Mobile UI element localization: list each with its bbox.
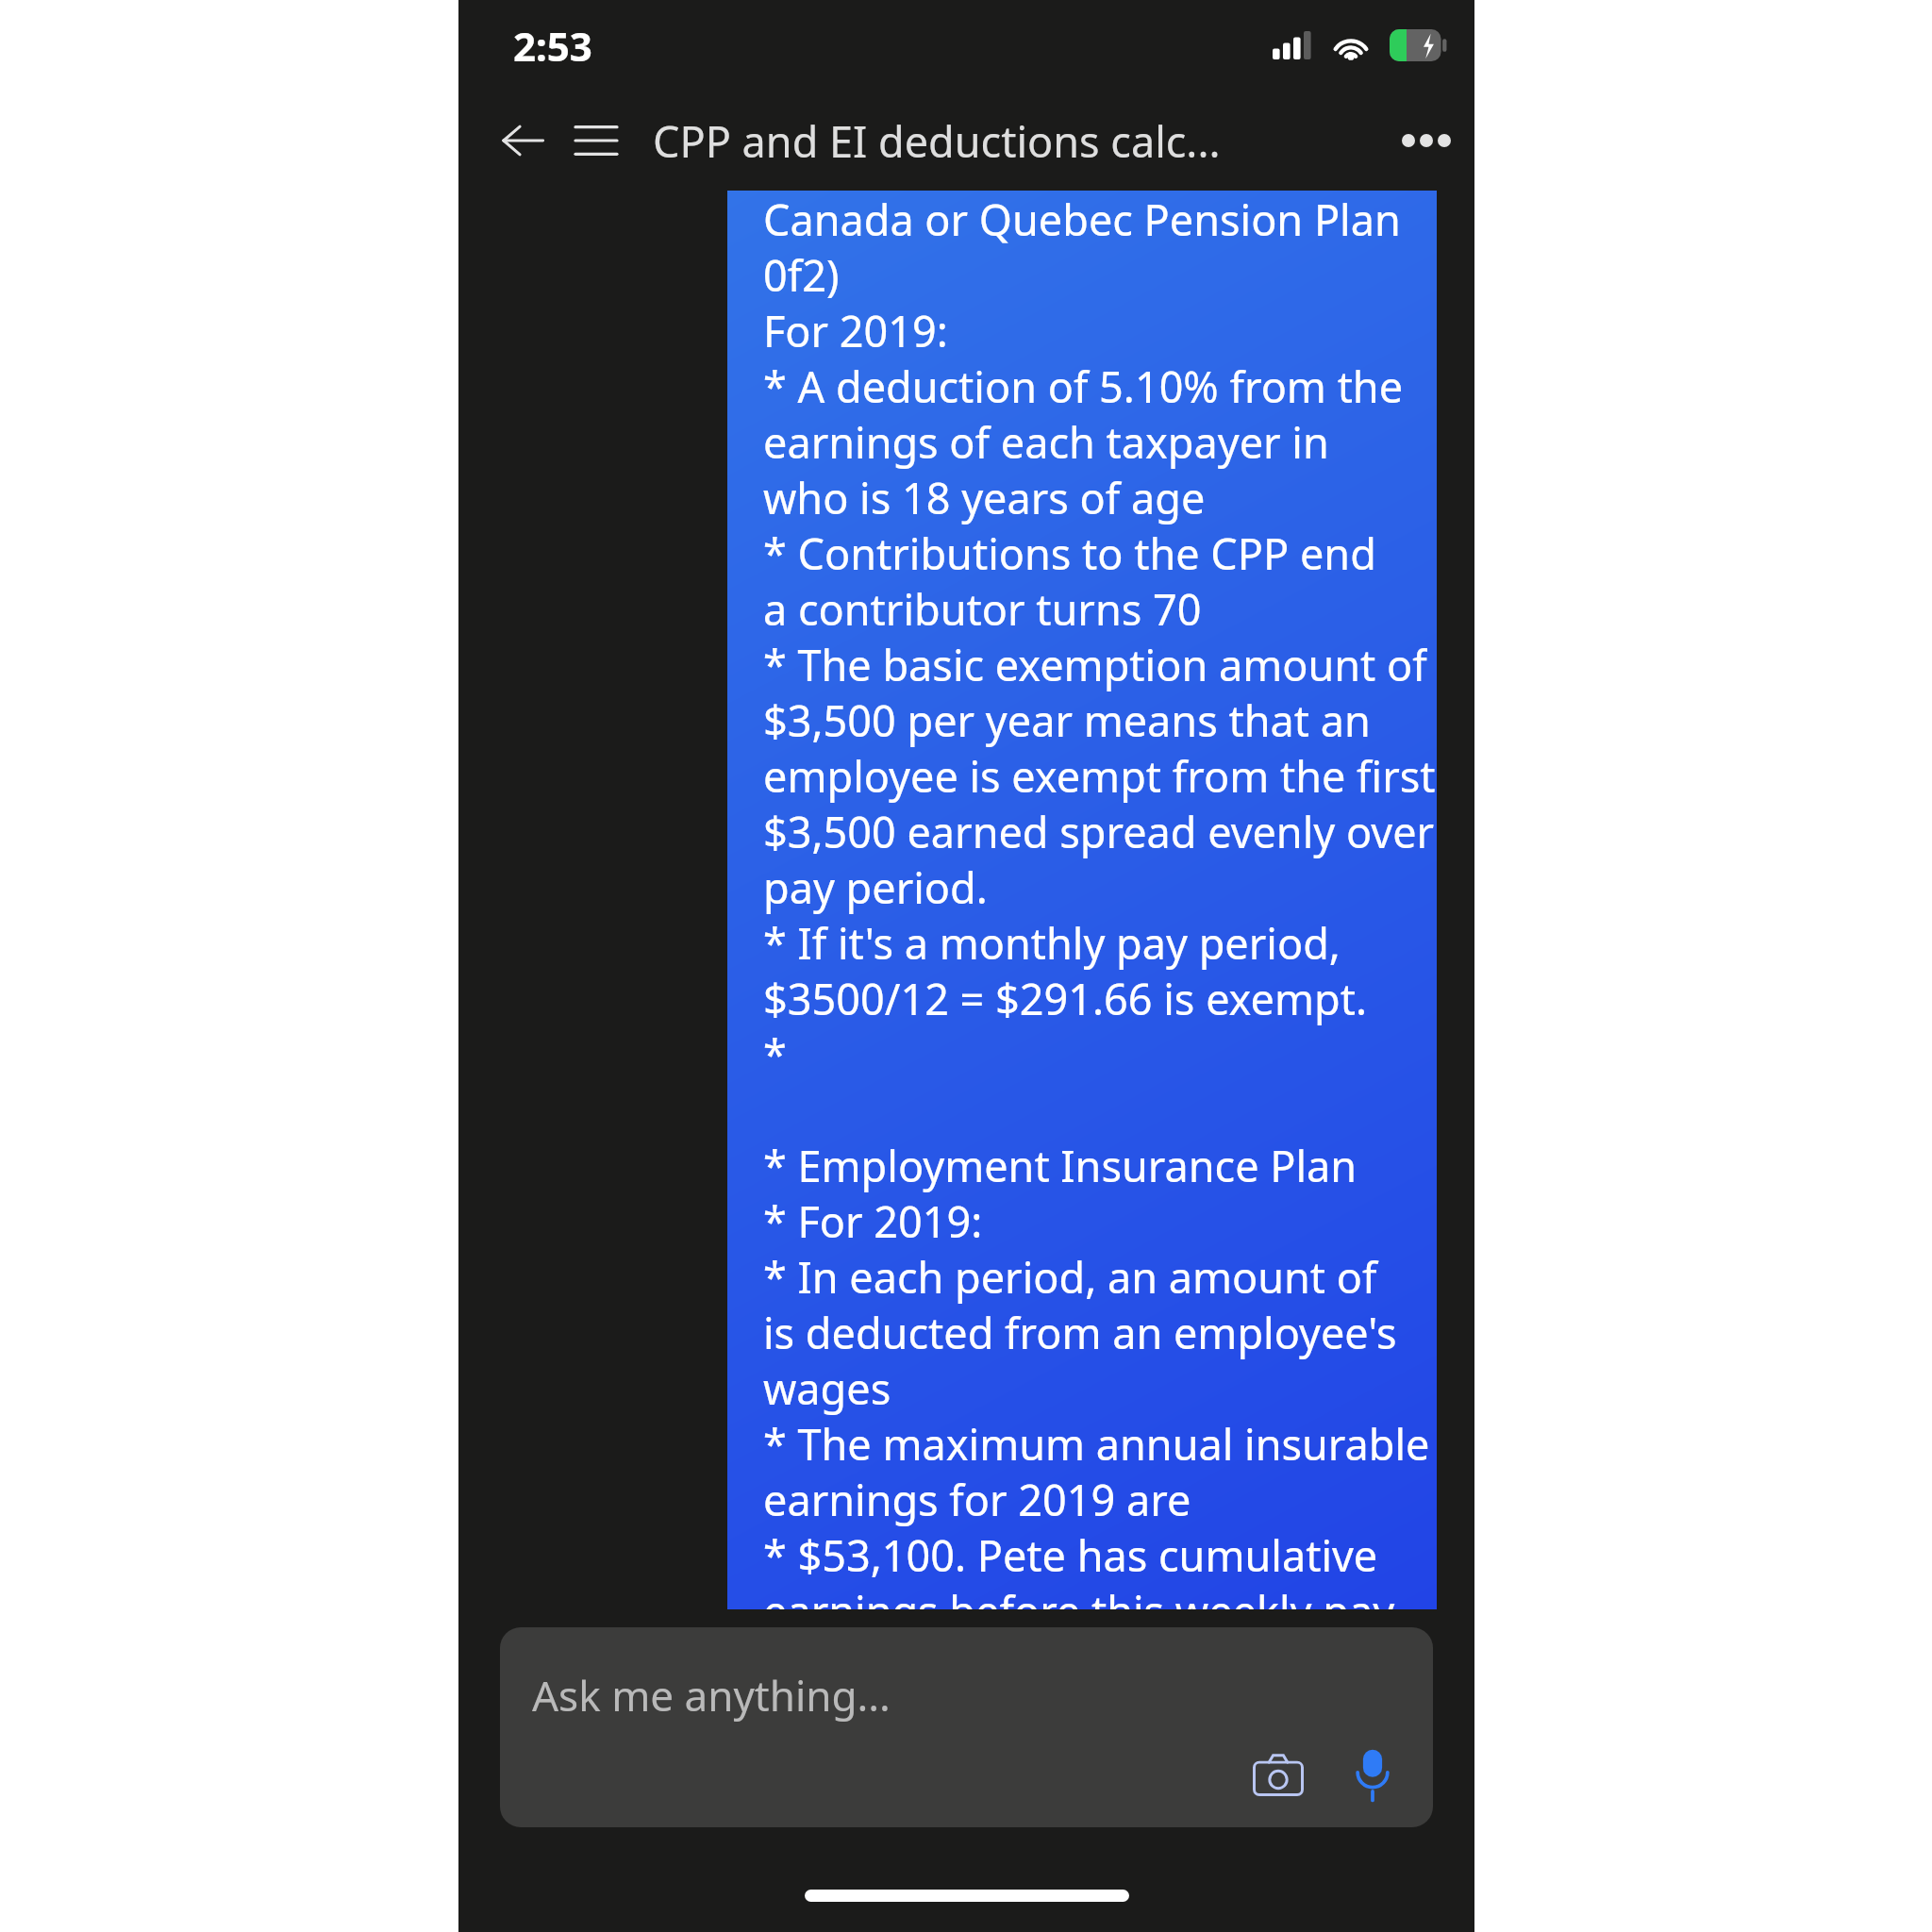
staticText: who is 18 years of age — [763, 469, 1206, 525]
staticText: 2:53 — [513, 19, 592, 73]
button[interactable]: Back — [489, 107, 557, 175]
staticText: earnings before this weekly pay — [763, 1582, 1395, 1609]
staticText: * In each period, an amount of 1.62% — [763, 1248, 1437, 1304]
staticText: earnings for 2019 are — [763, 1471, 1191, 1526]
button[interactable]: More options — [1388, 102, 1465, 179]
staticText: * $53,100. Pete has cumulative — [763, 1526, 1378, 1582]
staticText: * Contributions to the CPP end when — [763, 525, 1437, 580]
staticText: employee is exempt from the first — [763, 747, 1436, 803]
staticText: CPP and EI deductions calc... — [653, 112, 1388, 170]
staticText: * The maximum annual insurable — [763, 1415, 1430, 1471]
staticText: pay period. — [763, 858, 988, 914]
staticText: * — [763, 1025, 787, 1081]
staticText: Canada or Quebec Pension Plan (2 — [763, 191, 1437, 246]
staticText: earnings of each taxpayer in Canada — [763, 413, 1437, 469]
staticText: For 2019: — [763, 302, 948, 358]
staticText: $3,500 per year means that an — [763, 691, 1371, 747]
staticText: a contributor turns 70 — [763, 580, 1202, 636]
staticText: * A deduction of 5.10% from the — [763, 358, 1404, 413]
button[interactable]: Menu — [562, 107, 630, 175]
staticText: Ask me anything... — [532, 1667, 891, 1724]
button[interactable]: Canada or Quebec Pension Plan (2 — [727, 191, 1437, 1609]
staticText: is deducted from an employee's — [763, 1304, 1397, 1359]
staticText: * The basic exemption amount of — [763, 636, 1427, 691]
button[interactable]: Camera — [1242, 1739, 1314, 1810]
staticText: $3,500 earned spread evenly over the — [763, 803, 1437, 858]
staticText: * For 2019: — [763, 1192, 983, 1248]
button[interactable]: Microphone — [1337, 1739, 1408, 1810]
staticText: $3500/12 = $291.66 is exempt. — [763, 970, 1367, 1025]
button[interactable]: Ask me anything... — [500, 1627, 1433, 1827]
staticText: * If it's a monthly pay period, — [763, 914, 1341, 970]
staticText: * Employment Insurance Plan — [763, 1137, 1357, 1192]
staticText: 0f2) — [763, 246, 840, 302]
staticText: wages — [763, 1359, 891, 1415]
